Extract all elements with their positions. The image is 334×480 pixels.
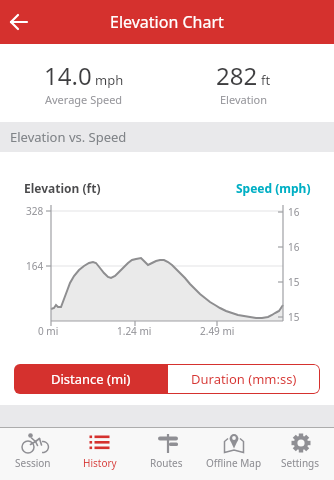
button[interactable]: Distance (mi)	[14, 364, 167, 394]
staticText: 2.49 mi	[200, 324, 235, 338]
staticText: 282	[216, 59, 258, 92]
staticText: mph	[95, 71, 124, 89]
staticText: Elevation (ft)	[24, 180, 101, 196]
staticText: Routes	[150, 456, 183, 470]
staticText: ft	[261, 71, 271, 89]
button[interactable]: Settings	[267, 428, 334, 480]
button[interactable]: Routes	[133, 428, 200, 480]
staticText: 15	[288, 310, 300, 324]
staticText: Elevation	[220, 92, 267, 107]
staticText: 0 mi	[38, 324, 59, 338]
staticText: 1.24 mi	[117, 324, 152, 338]
button[interactable]: Offline Map	[200, 428, 267, 480]
staticText: Settings	[281, 456, 320, 470]
staticText: 16	[288, 240, 300, 254]
staticText: Duration (mm:ss)	[191, 370, 297, 388]
staticText: 15	[288, 275, 300, 289]
staticText: 16	[288, 205, 300, 219]
button[interactable]: History	[66, 428, 133, 480]
staticText: Session	[15, 456, 51, 470]
staticText: 328	[26, 204, 44, 218]
staticText: Elevation vs. Speed	[10, 128, 127, 146]
staticText: Speed (mph)	[236, 180, 311, 196]
staticText: 14.0	[44, 59, 92, 92]
staticText: History	[83, 456, 117, 470]
staticText: Average Speed	[45, 92, 123, 107]
staticText: Elevation Chart	[110, 11, 224, 33]
staticText: 164	[26, 259, 44, 273]
button[interactable]	[0, 0, 44, 44]
button[interactable]: Duration (mm:ss)	[167, 364, 320, 394]
staticText: Offline Map	[206, 456, 262, 470]
button[interactable]: Session	[0, 428, 66, 480]
staticText: Distance (mi)	[51, 370, 131, 388]
